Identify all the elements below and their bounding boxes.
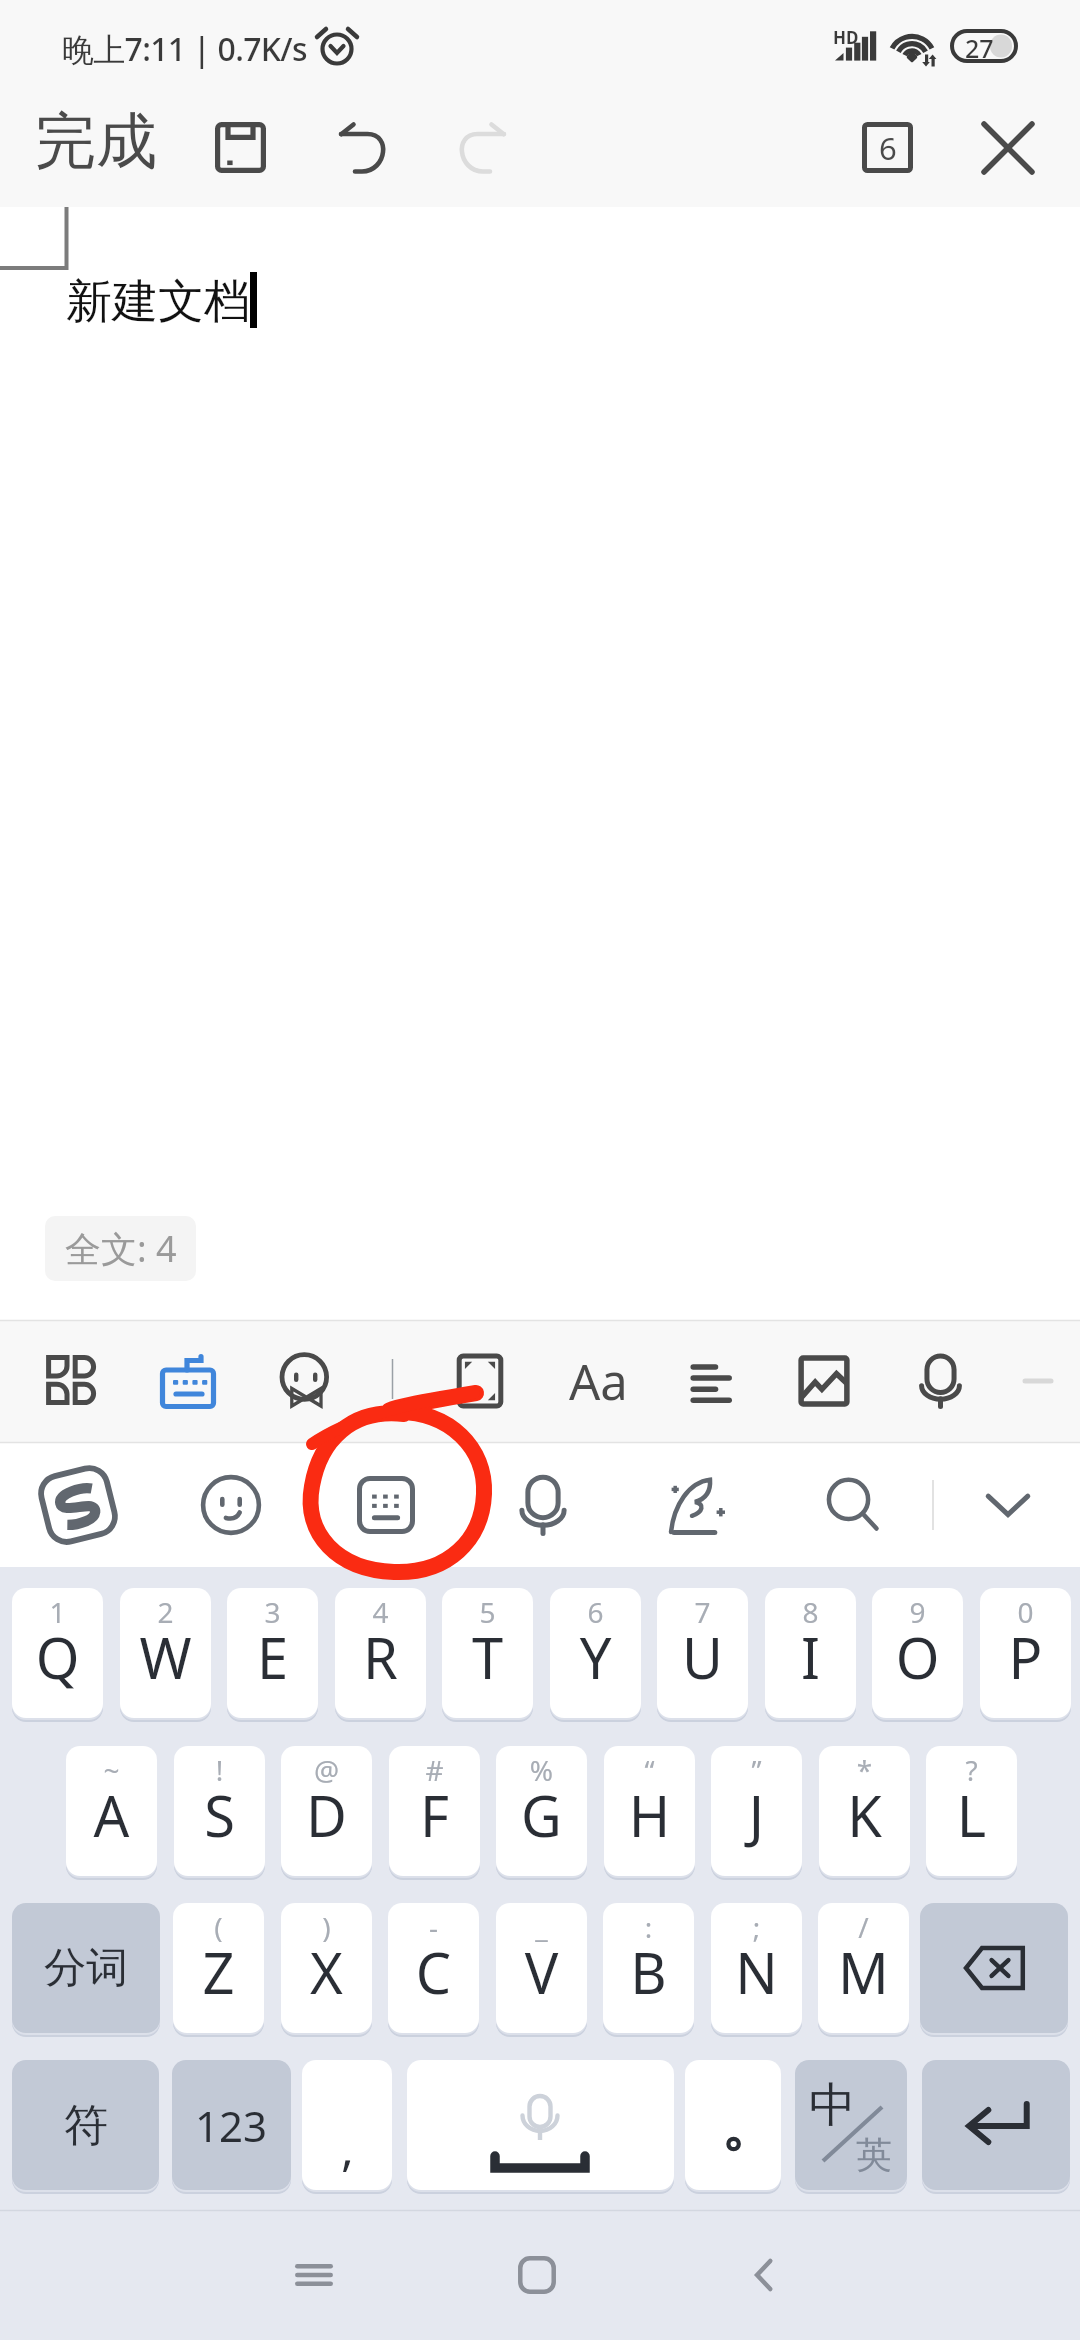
staticText: 完成 [35, 103, 157, 180]
staticText: 27 [965, 31, 994, 65]
button[interactable]: _ [496, 1903, 587, 2033]
button[interactable]: , [302, 2060, 392, 2190]
staticText: D [281, 1777, 372, 1853]
button[interactable]: 8 [765, 1588, 856, 1718]
staticText: T [442, 1619, 533, 1695]
staticText: C [388, 1934, 479, 2010]
button[interactable]: 123 [172, 2060, 291, 2190]
button[interactable]: Back [705, 2210, 825, 2340]
staticText: Y [550, 1619, 641, 1695]
staticText: 中 [809, 2076, 856, 2135]
button[interactable]: Undo [321, 88, 403, 207]
staticText: B [603, 1934, 694, 2010]
button[interactable]: 全文: 4 [45, 1216, 196, 1281]
button[interactable]: Tool [144, 1320, 232, 1442]
staticText: * [819, 1751, 910, 1789]
button[interactable]: 5 [442, 1588, 533, 1718]
button[interactable]: Tool [666, 1320, 754, 1442]
button[interactable]: Key [483, 1442, 603, 1567]
button[interactable]: 分词 [12, 1903, 160, 2033]
button[interactable]: Font [554, 1320, 642, 1442]
button[interactable]: ? [926, 1746, 1017, 1876]
button[interactable]: Pages [847, 88, 927, 207]
staticText: V [496, 1934, 587, 2010]
button[interactable]: Key [171, 1442, 291, 1567]
button[interactable]: ; [711, 1903, 802, 2033]
staticText: L [926, 1777, 1017, 1853]
staticText: ! [174, 1751, 265, 1789]
button[interactable]: Redo [442, 88, 524, 207]
button[interactable]: ~ [66, 1746, 157, 1876]
button[interactable]: % [496, 1746, 587, 1876]
button[interactable]: ) [281, 1903, 372, 2033]
button[interactable]: Key [793, 1442, 913, 1567]
staticText: Z [173, 1934, 264, 2010]
staticText: 分词 [44, 1942, 128, 1995]
button[interactable] [920, 1903, 1068, 2033]
staticText: P [980, 1619, 1071, 1695]
button[interactable] [685, 2060, 781, 2190]
staticText: : [603, 1908, 694, 1946]
button[interactable]: 9 [872, 1588, 963, 1718]
button[interactable]: # [389, 1746, 480, 1876]
staticText: R [335, 1619, 426, 1695]
button[interactable] [922, 2060, 1070, 2190]
staticText: Q [12, 1619, 103, 1695]
button[interactable]: Key [326, 1442, 446, 1567]
button[interactable]: Key [948, 1442, 1068, 1567]
staticText: E [227, 1619, 318, 1695]
button[interactable]: Sogou [18, 1442, 138, 1567]
button[interactable]: 完成 [2, 88, 190, 207]
staticText: X [281, 1934, 372, 2010]
staticText: ” [711, 1751, 802, 1789]
button[interactable]: 6 [550, 1588, 641, 1718]
button[interactable]: Recents [254, 2210, 374, 2340]
button[interactable]: Tool [28, 1320, 116, 1442]
button[interactable]: Close [968, 88, 1048, 207]
button[interactable]: Key [638, 1442, 758, 1567]
button[interactable]: / [818, 1903, 909, 2033]
staticText: 新建文档 [66, 273, 250, 331]
button[interactable]: : [603, 1903, 694, 2033]
staticText: 全文: 4 [65, 1224, 177, 1273]
button[interactable]: 中 [795, 2060, 907, 2190]
staticText: A [66, 1777, 157, 1853]
staticText: U [657, 1619, 748, 1695]
staticText: 0 [980, 1593, 1071, 1631]
button[interactable]: Save [200, 88, 280, 207]
staticText: O [872, 1619, 963, 1695]
button[interactable]: ( [173, 1903, 264, 2033]
staticText: HD [833, 26, 859, 49]
button[interactable] [407, 2060, 674, 2190]
button[interactable]: @ [281, 1746, 372, 1876]
button[interactable]: 符 [12, 2060, 159, 2190]
button[interactable]: 4 [335, 1588, 426, 1718]
button[interactable]: 0 [980, 1588, 1071, 1718]
button[interactable]: ” [711, 1746, 802, 1876]
button[interactable]: 1 [12, 1588, 103, 1718]
button[interactable]: Home [477, 2210, 597, 2340]
staticText: I [765, 1619, 856, 1695]
staticText: N [711, 1934, 802, 2010]
button[interactable]: “ [604, 1746, 695, 1876]
staticText: # [389, 1751, 480, 1789]
staticText: H [604, 1777, 695, 1853]
staticText: ~ [66, 1751, 157, 1789]
button[interactable]: Tool [780, 1320, 868, 1442]
staticText: 123 [195, 2097, 268, 2154]
button[interactable]: 3 [227, 1588, 318, 1718]
button[interactable]: Tool [436, 1320, 524, 1442]
button[interactable]: Tool [994, 1320, 1080, 1442]
staticText: K [819, 1777, 910, 1853]
button[interactable]: - [388, 1903, 479, 2033]
button[interactable]: 7 [657, 1588, 748, 1718]
staticText: ( [173, 1908, 264, 1946]
staticText: , [341, 2115, 354, 2180]
button[interactable]: Tool [896, 1320, 984, 1442]
staticText: - [388, 1908, 479, 1946]
button[interactable]: * [819, 1746, 910, 1876]
button[interactable]: Tool [262, 1320, 350, 1442]
button[interactable]: ! [174, 1746, 265, 1876]
button[interactable]: 2 [120, 1588, 211, 1718]
staticText: J [711, 1777, 802, 1853]
